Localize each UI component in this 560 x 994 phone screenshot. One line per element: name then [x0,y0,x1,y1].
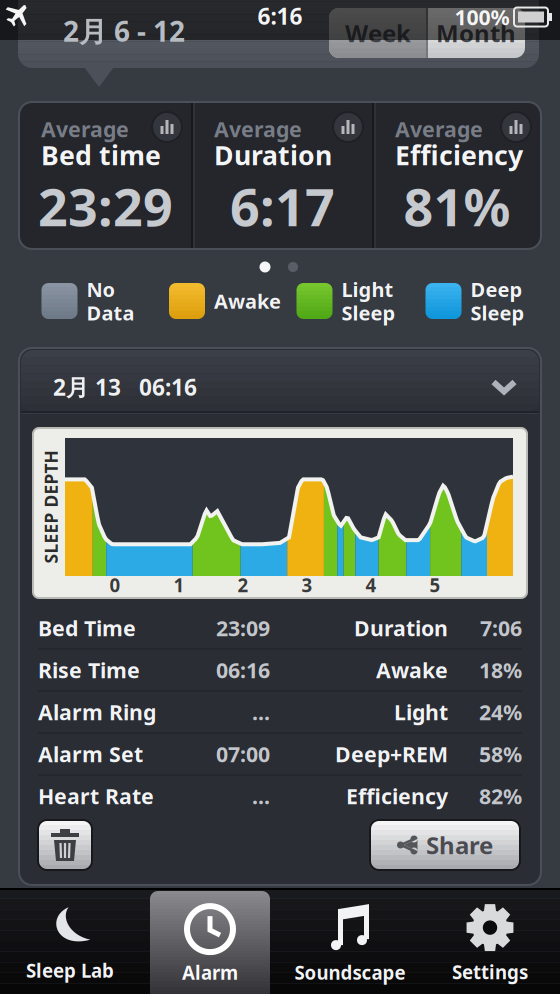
staticText: 100% [454,3,509,31]
staticText: Alarm Set [38,740,143,768]
staticText: 81% [403,171,510,241]
staticText: 2月 6 - 12 [63,12,185,50]
staticText: 07:00 [216,740,270,768]
staticText: 4 [365,573,376,597]
staticText: Soundscape [294,960,405,985]
staticText: 1 [173,573,184,597]
staticText: Light [394,698,448,726]
staticText: 2月 13 06:16 [53,372,197,402]
staticText: Average [214,115,302,143]
staticText: Alarm [182,960,238,985]
button[interactable]: Settings [420,894,560,994]
staticText: Sleep [341,299,395,326]
staticText: 0 [109,573,120,597]
staticText: SLEEP DEPTH [0,495,107,518]
staticText: Bed Time [38,614,136,642]
staticText: Average [395,115,483,143]
staticText: 6:16 [257,1,302,31]
button[interactable]: Share [370,820,520,870]
staticText: Rise Time [38,656,140,684]
staticText: 2 [237,573,248,597]
staticText: 18% [479,656,522,684]
staticText: 82% [479,782,522,810]
staticText: Heart Rate [38,782,154,810]
staticText: 5 [429,573,440,597]
staticText: Sleep [470,299,524,326]
staticText: 24% [479,698,522,726]
button[interactable]: Statistics chart [332,111,364,143]
staticText: Deep+REM [335,740,448,768]
staticText: ... [252,698,270,726]
staticText: Data [86,299,134,326]
button[interactable]: Statistics chart [500,111,532,143]
button[interactable]: Month [427,8,525,58]
button[interactable]: Delete [38,820,92,870]
staticText: Week [345,17,411,49]
staticText: Efficiency [346,782,448,810]
button[interactable]: Week [329,8,427,58]
staticText: Average [41,115,129,143]
staticText: Light [341,276,393,302]
staticText: Deep [470,276,522,302]
staticText: Settings [452,960,528,984]
staticText: Efficiency [395,137,523,173]
staticText: Alarm Ring [38,698,156,726]
button[interactable]: Statistics chart [151,111,183,143]
staticText: Duration [214,137,332,173]
staticText: Sleep Lab [26,958,114,983]
staticText: 06:16 [216,656,270,684]
button[interactable]: Collapse [487,372,521,402]
staticText: 58% [479,740,522,768]
staticText: 3 [301,573,312,597]
staticText: ... [252,782,270,810]
staticText: 6:17 [230,171,335,241]
staticText: Awake [376,656,448,684]
staticText: Awake [214,288,281,314]
staticText: Bed time [41,137,161,173]
staticText: Month [436,17,516,49]
staticText: 23:09 [216,614,270,642]
button[interactable]: Sleep Lab [0,894,140,994]
staticText: Duration [354,614,448,642]
staticText: 23:29 [38,171,173,241]
staticText: Share [426,829,493,861]
staticText: 7:06 [480,614,522,642]
staticText: No [86,276,115,302]
button[interactable]: Soundscape [280,894,420,994]
button[interactable]: Alarm [140,894,280,994]
